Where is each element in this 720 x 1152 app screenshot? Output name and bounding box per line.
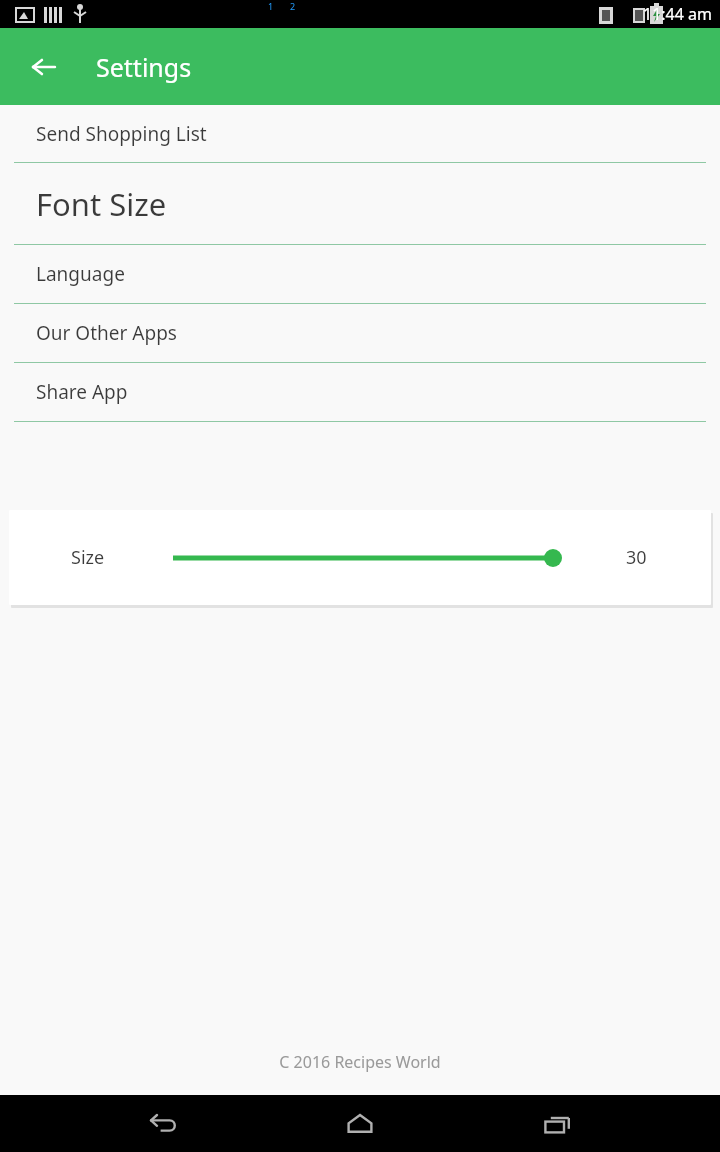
staticText: Our Other Apps [36, 320, 177, 346]
button[interactable]: Send Shopping List [0, 105, 720, 163]
staticText: Share App [36, 379, 128, 405]
button[interactable]: Share App [0, 363, 720, 422]
button[interactable]: Font Size [0, 163, 720, 245]
button[interactable]: Back [128, 1095, 198, 1152]
staticText: 1 [268, 0, 274, 12]
staticText: Send Shopping List [36, 121, 207, 147]
button[interactable]: Back [20, 43, 68, 91]
staticText: 2 [290, 0, 296, 12]
staticText: 11:44 am [643, 3, 712, 25]
staticText: Size [71, 545, 105, 570]
button[interactable]: Size [9, 510, 711, 605]
staticText: Font Size [36, 183, 167, 225]
staticText: 30 [626, 545, 647, 570]
staticText: C 2016 Recipes World [0, 1051, 720, 1073]
button[interactable]: Home [325, 1095, 395, 1152]
button[interactable]: Recent apps [523, 1095, 593, 1152]
staticText: Language [36, 261, 125, 287]
button[interactable]: Our Other Apps [0, 304, 720, 363]
staticText: Settings [96, 50, 192, 84]
button[interactable]: Language [0, 245, 720, 304]
